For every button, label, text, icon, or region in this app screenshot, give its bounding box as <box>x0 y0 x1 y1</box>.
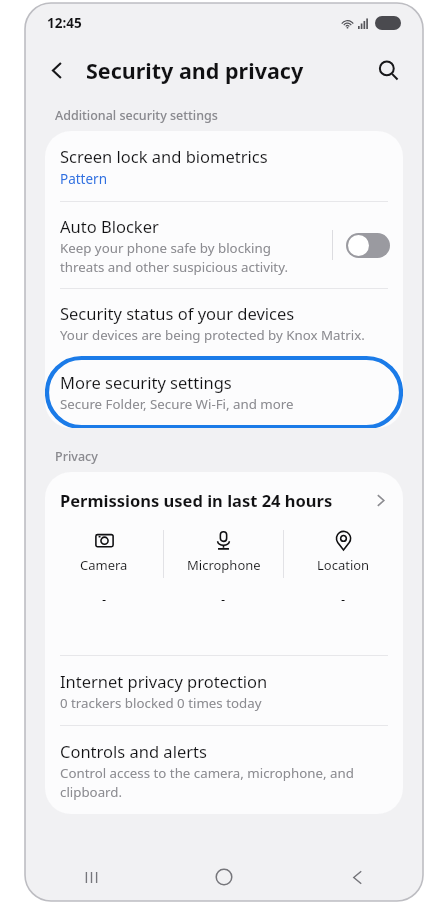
button[interactable]: Auto Blocker <box>45 202 403 288</box>
button[interactable]: Location <box>284 530 403 608</box>
staticText: More security settings <box>60 371 232 393</box>
staticText: Keep your phone safe by blocking threats… <box>60 239 288 275</box>
staticText: - <box>221 590 226 608</box>
staticText: Internet privacy protection <box>60 670 268 692</box>
button[interactable]: Recent apps <box>68 854 114 900</box>
staticText: Pattern <box>60 170 108 188</box>
staticText: Secure Folder, Secure Wi-Fi, and more <box>60 395 294 413</box>
button[interactable]: Auto Blocker toggle <box>346 233 390 258</box>
button[interactable]: Search <box>367 49 409 91</box>
staticText: - <box>102 590 107 608</box>
button[interactable]: Back <box>334 854 380 900</box>
button[interactable]: Screen lock and biometrics <box>45 131 403 201</box>
staticText: Additional security settings <box>55 107 218 124</box>
staticText: Controls and alerts <box>60 740 207 762</box>
staticText: Permissions used in last 24 hours <box>60 489 373 511</box>
staticText: Auto Blocker <box>60 215 159 237</box>
button[interactable]: Controls and alerts <box>45 726 403 814</box>
button[interactable]: Permissions used in last 24 hours <box>45 472 403 520</box>
button[interactable]: Camera <box>45 530 163 608</box>
button[interactable]: Back <box>37 50 77 90</box>
staticText: 0 trackers blocked 0 times today <box>60 694 262 712</box>
button[interactable]: Home <box>201 854 247 900</box>
staticText: Security status of your devices <box>60 302 295 324</box>
staticText: Camera <box>80 556 128 574</box>
staticText: Location <box>317 556 370 574</box>
staticText: Your devices are being protected by Knox… <box>60 326 365 344</box>
button[interactable]: Security status of your devices <box>45 289 403 357</box>
staticText: Privacy <box>55 448 98 465</box>
button[interactable]: Microphone <box>164 530 283 608</box>
button[interactable]: Internet privacy protection <box>45 656 403 725</box>
button[interactable]: More security settings <box>47 358 401 427</box>
staticText: - <box>341 590 346 608</box>
staticText: Security and privacy <box>86 56 304 85</box>
staticText: Microphone <box>187 556 261 574</box>
staticText: Control access to the camera, microphone… <box>60 764 354 800</box>
staticText: Screen lock and biometrics <box>60 145 268 167</box>
staticText: 12:45 <box>47 14 82 32</box>
